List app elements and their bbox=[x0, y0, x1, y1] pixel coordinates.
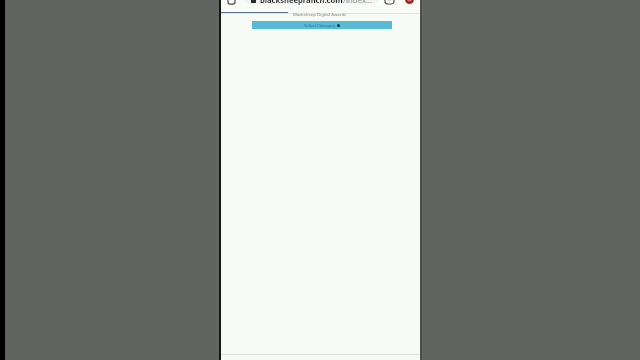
staticText: /index... bbox=[343, 0, 372, 5]
button[interactable]: Select Category bbox=[252, 21, 392, 29]
staticText: Select Category bbox=[304, 22, 336, 28]
staticText: Blacksheep Digital Awards bbox=[293, 11, 347, 17]
button[interactable]: Screenshot bbox=[385, 0, 394, 4]
button[interactable]: Stop recording bbox=[405, 0, 414, 4]
button[interactable]: Tabs bbox=[228, 0, 235, 4]
button[interactable] bbox=[243, 0, 379, 4]
staticText: blacksheepranch.com bbox=[260, 0, 343, 5]
